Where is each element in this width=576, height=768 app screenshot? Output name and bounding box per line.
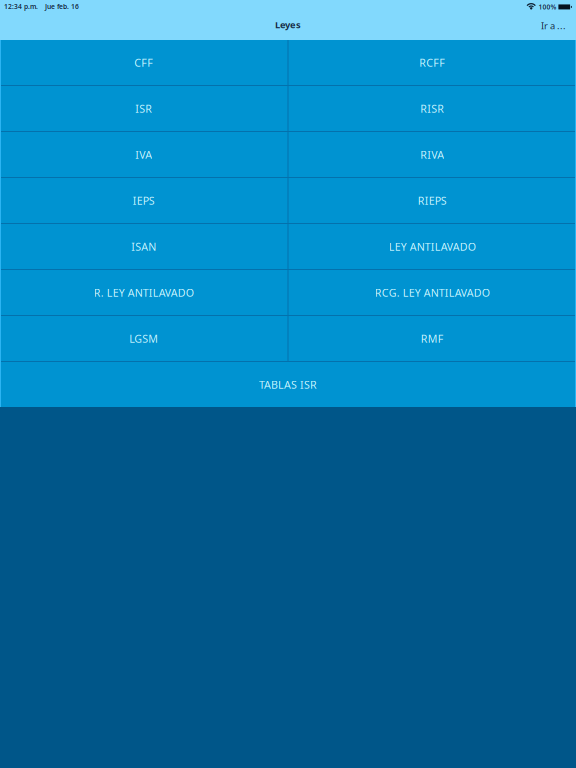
- button[interactable]: RCG. LEY ANTILAVADO: [288, 270, 576, 315]
- button[interactable]: RIVA: [288, 132, 576, 177]
- button[interactable]: RCFF: [288, 40, 576, 85]
- button[interactable]: ISR: [0, 86, 287, 131]
- staticText: Leyes: [275, 18, 301, 31]
- staticText: CFF: [134, 55, 153, 70]
- staticText: 12:34 p.m.: [4, 2, 38, 11]
- staticText: RIVA: [420, 147, 444, 162]
- button[interactable]: LEY ANTILAVADO: [288, 224, 576, 269]
- button[interactable]: R. LEY ANTILAVADO: [0, 270, 287, 315]
- button[interactable]: RMF: [288, 316, 576, 361]
- button[interactable]: CFF: [0, 40, 287, 85]
- staticText: ISAN: [131, 239, 156, 254]
- staticText: IVA: [135, 147, 152, 162]
- staticText: Jue feb. 16: [45, 2, 79, 11]
- staticText: LGSM: [129, 331, 158, 346]
- button[interactable]: RIEPS: [288, 178, 576, 223]
- staticText: RCG. LEY ANTILAVADO: [375, 285, 490, 300]
- button[interactable]: RISR: [288, 86, 576, 131]
- staticText: RCFF: [419, 55, 445, 70]
- button[interactable]: TABLAS ISR: [0, 362, 576, 407]
- staticText: IEPS: [133, 193, 155, 208]
- staticText: Ir a ...: [541, 19, 566, 32]
- staticText: TABLAS ISR: [259, 377, 317, 392]
- button[interactable]: Ir a ...: [537, 15, 570, 36]
- staticText: ISR: [135, 101, 152, 116]
- staticText: 100%: [538, 2, 556, 11]
- button[interactable]: LGSM: [0, 316, 287, 361]
- button[interactable]: ISAN: [0, 224, 287, 269]
- staticText: RMF: [421, 331, 444, 346]
- staticText: RIEPS: [418, 193, 447, 208]
- staticText: RISR: [420, 101, 444, 116]
- staticText: LEY ANTILAVADO: [389, 239, 476, 254]
- button[interactable]: IVA: [0, 132, 287, 177]
- staticText: R. LEY ANTILAVADO: [94, 285, 194, 300]
- button[interactable]: IEPS: [0, 178, 287, 223]
